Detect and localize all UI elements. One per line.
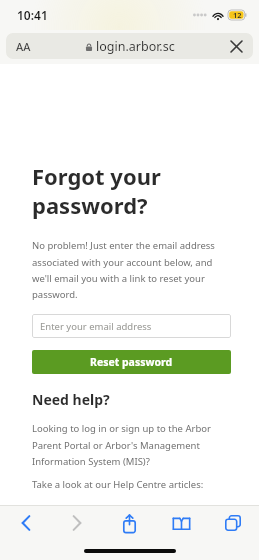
staticText: Looking to log in or sign up to the Arbo… xyxy=(32,422,231,468)
button[interactable]: Forward xyxy=(51,506,103,540)
staticText: Reset password xyxy=(90,355,173,369)
button[interactable]: Enter your email address xyxy=(32,314,231,338)
button[interactable]: Share xyxy=(103,506,155,540)
button[interactable]: Tabs xyxy=(207,506,259,540)
button[interactable]: Bookmarks xyxy=(155,506,207,540)
staticText: AA xyxy=(16,39,31,54)
staticText: Enter your email address xyxy=(40,320,152,333)
button[interactable]: Reset password xyxy=(32,350,231,374)
staticText: 10:41 xyxy=(17,7,48,23)
staticText: Forgot your password? xyxy=(32,161,161,220)
staticText: 12 xyxy=(233,10,242,20)
staticText: No problem! Just enter the email address… xyxy=(32,239,231,301)
button[interactable]: Stop loading xyxy=(227,37,245,55)
button[interactable]: Back xyxy=(0,506,51,540)
staticText: Need help? xyxy=(32,390,110,409)
button[interactable]: AA xyxy=(6,33,253,59)
staticText: Take a look at our Help Centre articles: xyxy=(32,478,204,491)
staticText: login.arbor.sc xyxy=(96,38,175,55)
